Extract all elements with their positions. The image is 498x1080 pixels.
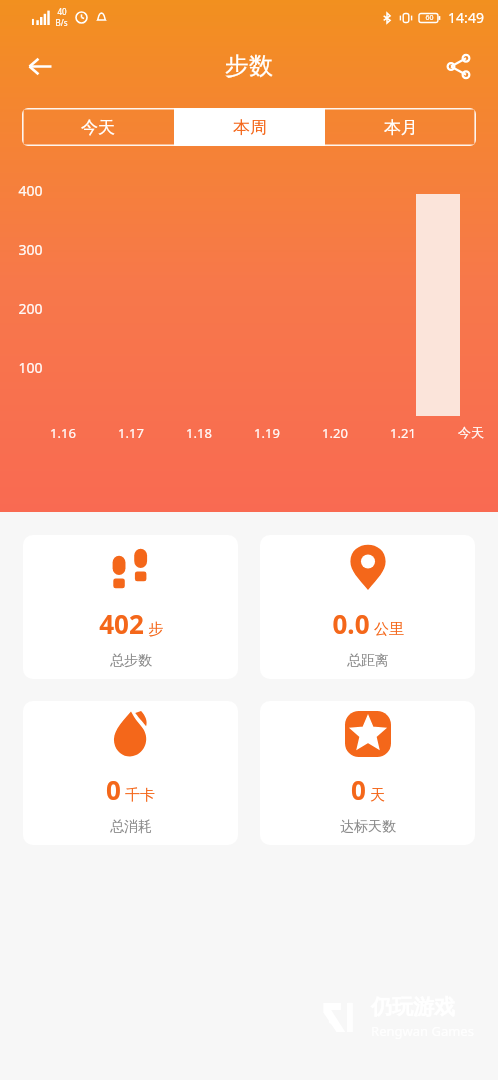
staticText: 仍玩游戏 xyxy=(371,994,455,1020)
staticText: 0 xyxy=(106,772,121,807)
staticText: 达标天数 xyxy=(340,818,396,836)
button[interactable]: 402 xyxy=(23,535,238,679)
staticText: 0 xyxy=(351,772,366,807)
button[interactable]: 本月 xyxy=(325,108,476,146)
staticText: 400 xyxy=(18,181,43,200)
staticText: 总消耗 xyxy=(110,818,152,836)
staticText: 100 xyxy=(18,358,43,377)
button[interactable]: 今天 xyxy=(22,108,174,146)
button[interactable]: 0 xyxy=(260,701,475,845)
staticText: B/s xyxy=(55,17,68,28)
staticText: 1.19 xyxy=(254,424,280,442)
button[interactable]: Share xyxy=(434,42,482,90)
staticText: 300 xyxy=(18,240,43,259)
staticText: 1.21 xyxy=(390,424,416,442)
staticText: 0.0 xyxy=(332,606,370,641)
button[interactable]: Back xyxy=(16,42,64,90)
staticText: 200 xyxy=(18,299,43,318)
staticText: 1.18 xyxy=(186,424,212,442)
staticText: 40 xyxy=(57,6,67,17)
button[interactable]: 本周 xyxy=(174,108,325,146)
staticText: 14:49 xyxy=(448,8,484,27)
staticText: 千卡 xyxy=(125,786,155,805)
button[interactable]: 0.0 xyxy=(260,535,475,679)
staticText: 今天 xyxy=(458,424,484,440)
staticText: 本月 xyxy=(384,117,418,138)
staticText: 步 xyxy=(148,620,163,639)
button[interactable]: 0 xyxy=(23,701,238,845)
staticText: 天 xyxy=(370,786,385,805)
staticText: 总距离 xyxy=(347,652,389,670)
staticText: 1.20 xyxy=(322,424,348,442)
staticText: 本周 xyxy=(233,117,267,138)
staticText: 1.17 xyxy=(118,424,144,442)
staticText: 60 xyxy=(425,13,434,23)
staticText: 402 xyxy=(99,606,144,641)
staticText: 步数 xyxy=(225,51,273,81)
staticText: 总步数 xyxy=(110,652,152,670)
staticText: 1.16 xyxy=(50,424,76,442)
staticText: 今天 xyxy=(81,117,115,138)
staticText: 公里 xyxy=(374,620,404,639)
